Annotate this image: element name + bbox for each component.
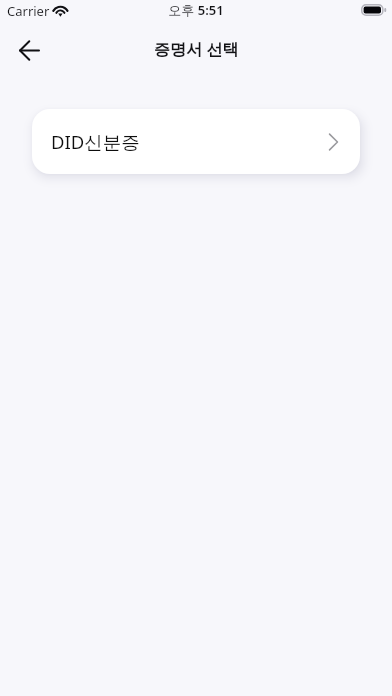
staticText: DID신분증 <box>51 129 140 154</box>
staticText: 증명서 선택 <box>154 38 239 60</box>
button[interactable]: Back <box>7 29 50 72</box>
staticText: 오후 5:51 <box>168 1 224 19</box>
staticText: Carrier <box>7 2 50 20</box>
button[interactable]: DID신분증 <box>32 109 360 174</box>
